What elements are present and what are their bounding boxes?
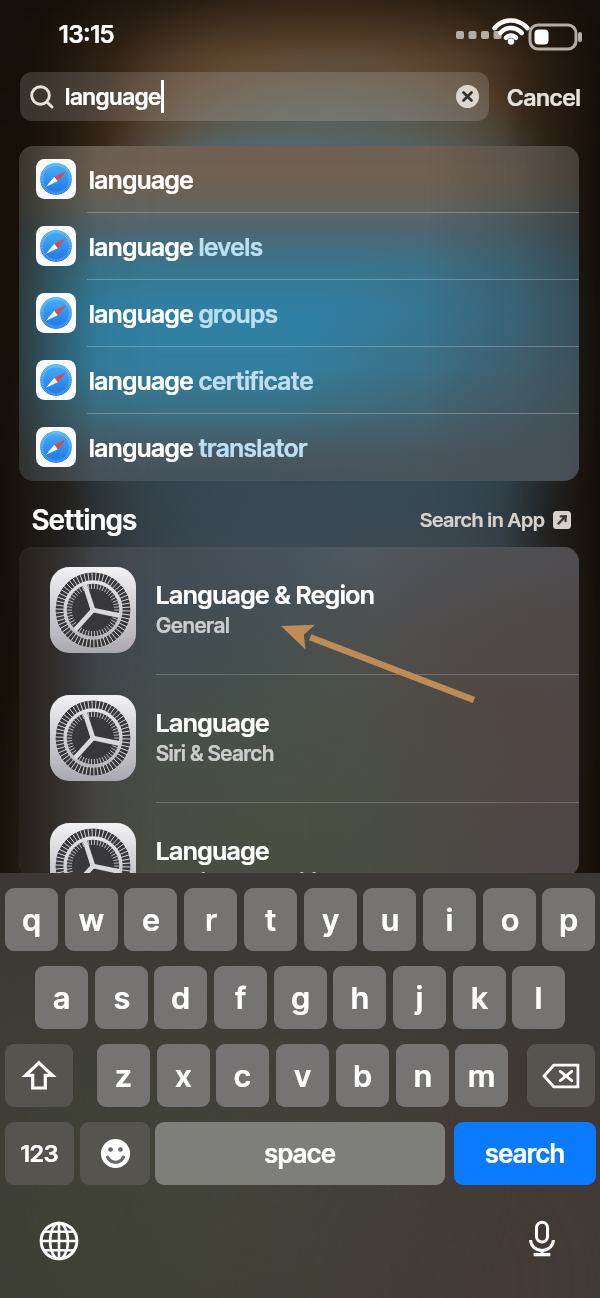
staticText: r <box>205 901 217 939</box>
button[interactable]: v <box>276 1044 329 1107</box>
button[interactable]: r <box>184 888 237 951</box>
staticText: f <box>235 979 246 1017</box>
button[interactable]: x <box>157 1044 210 1107</box>
button[interactable]: h <box>333 966 386 1029</box>
button[interactable]: Language & Region <box>19 547 579 674</box>
button[interactable]: g <box>274 966 327 1029</box>
staticText: a <box>53 979 70 1017</box>
button[interactable]: o <box>483 888 536 951</box>
button[interactable]: a <box>35 966 88 1029</box>
button[interactable]: Emoji keyboard <box>80 1122 150 1185</box>
staticText: m <box>468 1057 495 1095</box>
staticText: Language & Region <box>156 579 375 610</box>
staticText: 13:15 <box>59 19 115 49</box>
button[interactable]: Language <box>19 675 579 802</box>
staticText: l <box>535 979 542 1017</box>
staticText: language <box>65 83 162 111</box>
staticText: b <box>353 1057 372 1095</box>
button[interactable]: search <box>454 1122 596 1185</box>
button[interactable]: f <box>214 966 267 1029</box>
staticText: search <box>485 1138 565 1169</box>
button[interactable]: Shift <box>5 1044 73 1107</box>
staticText: Siri & Search <box>156 741 275 766</box>
button[interactable]: Change keyboard language <box>38 1220 80 1262</box>
button[interactable]: b <box>336 1044 389 1107</box>
staticText: t <box>265 901 276 939</box>
button[interactable]: Clear text <box>456 85 479 108</box>
button[interactable]: Search in App <box>412 500 579 540</box>
staticText: language translator <box>89 433 308 463</box>
button[interactable]: 123 <box>5 1122 74 1185</box>
staticText: Search in App <box>420 508 545 532</box>
staticText: Settings <box>32 503 137 537</box>
button[interactable]: s <box>95 966 148 1029</box>
staticText: g <box>291 979 310 1017</box>
staticText: General <box>156 613 230 638</box>
staticText: language certificate <box>89 366 314 396</box>
button[interactable]: m <box>455 1044 508 1107</box>
staticText: z <box>115 1057 132 1095</box>
button[interactable]: Backspace <box>527 1044 595 1107</box>
staticText: language levels <box>89 232 263 262</box>
staticText: s <box>114 979 130 1017</box>
staticText: h <box>351 979 369 1017</box>
button[interactable]: t <box>244 888 297 951</box>
button[interactable]: Language <box>19 803 579 877</box>
button[interactable]: y <box>304 888 357 951</box>
button[interactable]: d <box>154 966 207 1029</box>
button[interactable]: i <box>423 888 476 951</box>
staticText: i <box>446 901 453 939</box>
button[interactable]: Dictate <box>521 1218 563 1260</box>
button[interactable]: Cancel <box>495 72 590 121</box>
staticText: space <box>264 1138 336 1169</box>
button[interactable]: language translator <box>19 414 579 481</box>
staticText: Intelligence & Siri <box>156 869 317 877</box>
button[interactable]: e <box>124 888 177 951</box>
staticText: c <box>234 1057 251 1095</box>
button[interactable]: n <box>396 1044 449 1107</box>
staticText: q <box>22 901 41 939</box>
staticText: d <box>171 979 190 1017</box>
button[interactable]: p <box>542 888 595 951</box>
staticText: e <box>142 901 160 939</box>
staticText: j <box>416 979 423 1017</box>
button[interactable]: j <box>393 966 446 1029</box>
button[interactable]: k <box>453 966 506 1029</box>
button[interactable]: c <box>216 1044 269 1107</box>
button[interactable]: language <box>19 146 579 213</box>
button[interactable]: language levels <box>19 213 579 280</box>
staticText: language groups <box>89 299 278 329</box>
button[interactable]: language certificate <box>19 347 579 414</box>
staticText: x <box>175 1057 192 1095</box>
staticText: language <box>89 165 194 195</box>
button[interactable]: space <box>155 1122 445 1185</box>
staticText: w <box>79 901 104 939</box>
button[interactable]: language groups <box>19 280 579 347</box>
button[interactable]: u <box>363 888 416 951</box>
staticText: 123 <box>20 1139 59 1168</box>
button[interactable]: w <box>65 888 118 951</box>
staticText: Language <box>156 707 270 738</box>
button[interactable]: language <box>20 72 489 121</box>
staticText: y <box>322 901 339 939</box>
staticText: v <box>294 1057 311 1095</box>
staticText: p <box>559 901 578 939</box>
staticText: Language <box>156 835 270 866</box>
button[interactable]: z <box>97 1044 150 1107</box>
staticText: u <box>381 901 399 939</box>
staticText: n <box>414 1057 432 1095</box>
staticText: o <box>501 901 519 939</box>
button[interactable]: q <box>5 888 58 951</box>
button[interactable]: l <box>512 966 565 1029</box>
staticText: Cancel <box>507 83 581 111</box>
staticText: k <box>471 979 488 1017</box>
